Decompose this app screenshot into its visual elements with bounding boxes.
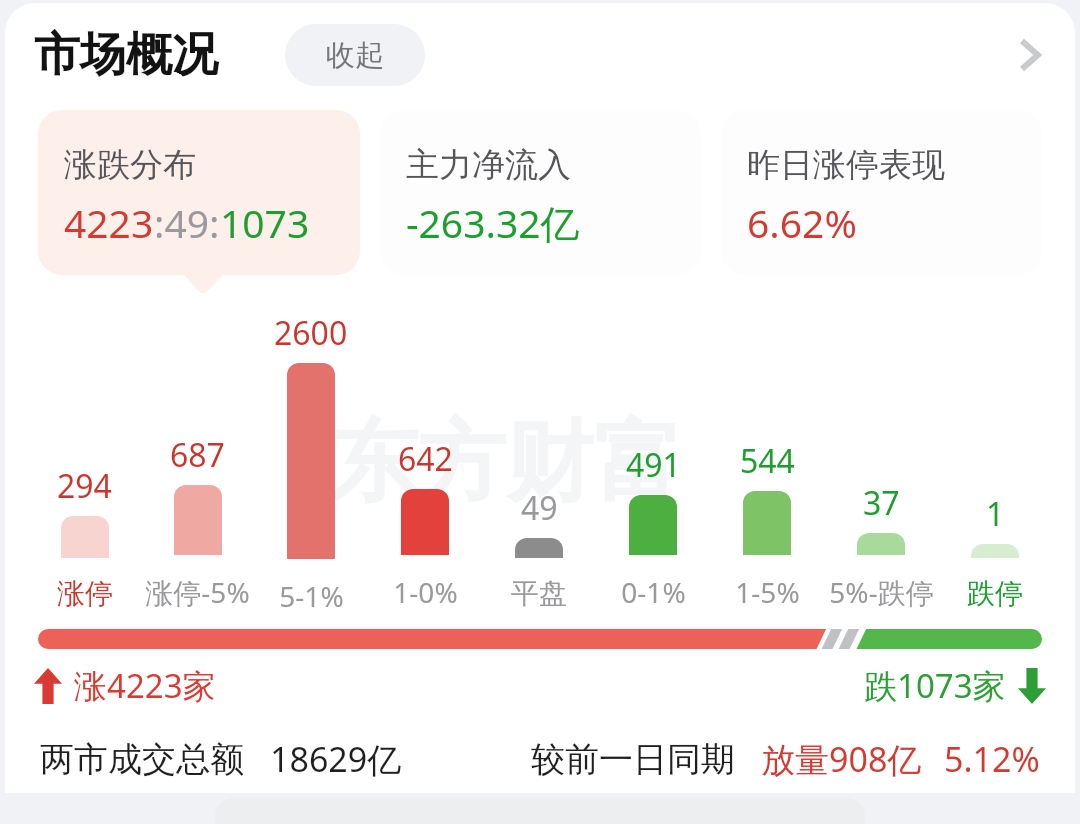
staticText: 昨日涨停表现	[747, 144, 945, 186]
button[interactable]: 昨日涨停表现	[721, 110, 1042, 275]
staticText: 涨4223家	[74, 663, 216, 708]
staticText: 涨停-5%	[145, 573, 250, 611]
staticText: 18629亿	[270, 736, 402, 782]
button[interactable]: 查看更多	[994, 20, 1064, 90]
staticText: 49	[521, 486, 558, 530]
staticText: 294	[57, 464, 112, 508]
staticText: -263.32亿	[406, 196, 580, 249]
button[interactable]: 主力净流入	[380, 110, 701, 275]
staticText: 涨停	[57, 576, 113, 611]
staticText: :49:	[154, 196, 220, 249]
staticText: 4223	[64, 196, 154, 249]
staticText: 主力净流入	[406, 144, 571, 186]
staticText: 1-0%	[393, 573, 458, 611]
staticText: 1	[986, 492, 1005, 536]
staticText: 收起	[326, 37, 384, 74]
staticText: 涨跌分布	[64, 144, 196, 186]
staticText: 544	[740, 439, 795, 483]
staticText: 1-5%	[735, 573, 800, 611]
staticText: 37	[863, 481, 900, 525]
staticText: 2600	[274, 311, 348, 355]
staticText: 放量908亿	[761, 736, 922, 782]
staticText: 1073	[220, 196, 310, 249]
staticText: 跌1073家	[864, 663, 1006, 708]
staticText: 5.12%	[944, 736, 1040, 782]
staticText: 两市成交总额	[40, 738, 244, 781]
staticText: 6.62%	[747, 196, 857, 249]
staticText: 491	[626, 443, 681, 487]
staticText: 东方财富	[330, 407, 682, 518]
staticText: 较前一日同期	[531, 738, 735, 781]
staticText: 跌停	[967, 576, 1023, 611]
button[interactable]: 收起	[285, 24, 425, 86]
button[interactable]: 涨跌分布	[38, 110, 360, 275]
staticText: 市场概况	[34, 26, 218, 84]
staticText: 642	[398, 437, 453, 481]
staticText: 687	[170, 433, 225, 477]
staticText: 0-1%	[621, 573, 686, 611]
staticText: 平盘	[511, 576, 567, 611]
staticText: 5-1%	[279, 577, 344, 611]
staticText: 5%-跌停	[829, 573, 934, 611]
